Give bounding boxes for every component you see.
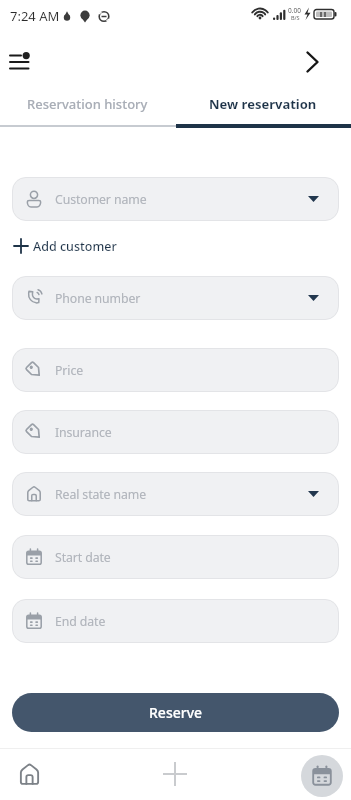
staticText: Reservation history [27,95,148,113]
staticText: 7:24 AM [10,7,60,25]
staticText: Price [55,362,84,379]
staticText: Customer name [55,191,147,208]
button[interactable]: End date [12,599,339,643]
staticText: Insurance [55,424,112,441]
button[interactable]: Start date [12,535,339,579]
button[interactable]: Price [12,348,339,392]
staticText: New reservation [209,95,317,113]
button[interactable] [296,44,332,80]
button[interactable]: Insurance [12,410,339,454]
button[interactable] [4,47,40,83]
staticText: Phone number [55,290,141,307]
button[interactable]: Phone number [12,276,339,320]
button[interactable]: New reservation [175,93,351,115]
staticText: B/S [291,14,300,21]
button[interactable]: Reservation history [0,93,175,115]
staticText: Reserve [149,703,203,722]
button[interactable] [6,751,52,797]
button[interactable]: Add customer [14,236,117,256]
button[interactable]: Customer name [12,177,339,221]
staticText: Add customer [33,238,117,255]
button[interactable] [301,755,343,797]
button[interactable]: Reserve [12,693,339,732]
button[interactable]: Real state name [12,472,339,516]
staticText: 0.00 [288,6,301,15]
staticText: Start date [55,549,111,566]
button[interactable] [152,751,198,797]
staticText: Real state name [55,486,147,503]
staticText: End date [55,613,106,630]
